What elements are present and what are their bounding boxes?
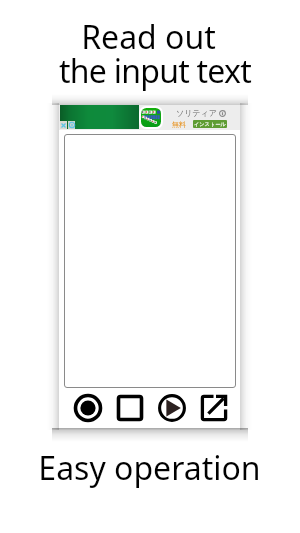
- staticText: インストール: [194, 121, 226, 128]
- staticText: ソリティア: [176, 108, 217, 118]
- staticText: 無料: [172, 120, 186, 129]
- button[interactable]: Text input: [64, 134, 236, 388]
- button[interactable]: Ad info: [68, 121, 75, 129]
- button[interactable]: インストール: [193, 120, 227, 128]
- staticText: Read out: [81, 15, 216, 59]
- staticText: the input text: [59, 49, 251, 93]
- button[interactable]: Close ad: [60, 121, 67, 129]
- button[interactable]: Share: [197, 392, 231, 424]
- staticText: Easy operation: [38, 446, 261, 490]
- button[interactable]: Play: [155, 392, 189, 424]
- button[interactable]: Stop: [113, 392, 147, 424]
- button[interactable]: Record: [71, 392, 105, 424]
- button[interactable]: Solitaire app icon: [141, 108, 161, 127]
